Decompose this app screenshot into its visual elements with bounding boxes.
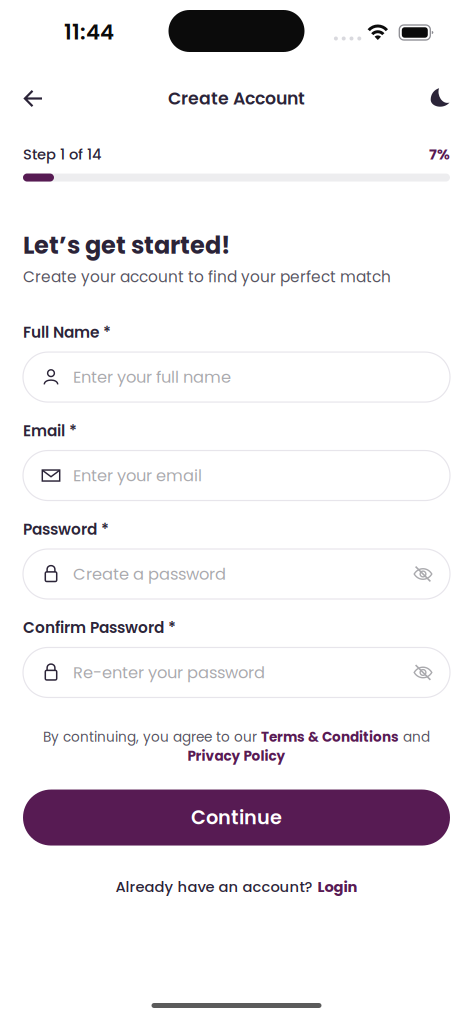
staticText: Enter your email <box>73 464 202 487</box>
button[interactable]: Terms & Conditions <box>261 727 399 746</box>
button[interactable]: Already have an account? <box>105 870 367 903</box>
button[interactable]: Back <box>10 75 56 121</box>
button[interactable]: Toggle dark mode <box>417 75 463 121</box>
staticText: Re-enter your password <box>73 661 265 684</box>
staticText: Email * <box>23 420 77 442</box>
staticText: Password * <box>23 518 109 540</box>
staticText: Enter your full name <box>73 366 231 388</box>
staticText: Already have an account? <box>115 876 312 897</box>
button[interactable]: Privacy Policy <box>187 746 285 765</box>
staticText: Create Account <box>168 86 305 111</box>
button[interactable]: Enter your full name <box>23 352 450 402</box>
staticText: Create a password <box>73 563 226 585</box>
staticText: 7% <box>429 144 450 164</box>
staticText: By continuing, you agree to our <box>43 727 261 746</box>
staticText: Confirm Password * <box>23 617 176 638</box>
staticText: and <box>399 727 430 746</box>
staticText: Login <box>317 876 357 897</box>
staticText: Let’s get started! <box>23 228 230 262</box>
button[interactable]: Re-enter your password <box>23 647 450 697</box>
staticText: Terms & Conditions <box>261 727 399 746</box>
staticText: Step 1 of 14 <box>23 144 101 164</box>
button[interactable]: Enter your email <box>23 450 450 500</box>
staticText: 11:44 <box>64 17 114 47</box>
staticText: Full Name * <box>23 322 111 343</box>
button[interactable]: Create a password <box>23 549 450 599</box>
button[interactable]: Continue <box>23 789 450 845</box>
staticText: Create your account to find your perfect… <box>23 266 391 288</box>
staticText: Privacy Policy <box>187 746 285 765</box>
staticText: Continue <box>191 804 282 831</box>
